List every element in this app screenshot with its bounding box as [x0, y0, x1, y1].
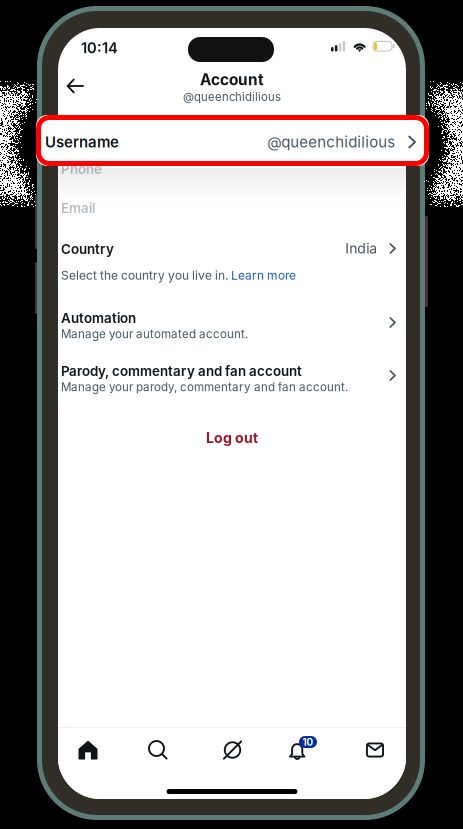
staticText: Learn more	[231, 268, 296, 282]
button[interactable]: Grok	[198, 728, 266, 772]
staticText: Parody, commentary and fan account	[61, 363, 302, 379]
button[interactable]: Search	[124, 728, 192, 772]
staticText: Username	[45, 133, 119, 151]
staticText: Automation	[61, 310, 136, 326]
button[interactable]: Back	[58, 71, 92, 101]
button[interactable]: Messages	[341, 728, 409, 772]
staticText: Select the country you live in.	[61, 268, 231, 282]
staticText: Log out	[206, 429, 258, 446]
staticText: Manage your parody, commentary and fan a…	[61, 380, 348, 394]
button[interactable]: Notifications	[269, 728, 337, 772]
staticText: @queenchidilious	[267, 133, 395, 151]
button[interactable]: Log out	[58, 424, 406, 452]
staticText: Phone	[61, 161, 102, 177]
staticText: 10	[302, 736, 313, 748]
button[interactable]: Username	[58, 115, 406, 141]
staticText: @queenchidilious	[183, 90, 281, 104]
button[interactable]: Country	[58, 234, 406, 286]
staticText: Account	[200, 70, 264, 89]
button[interactable]: Phone	[58, 154, 406, 180]
button[interactable]: Home	[54, 728, 122, 772]
staticText: India	[345, 240, 377, 257]
button[interactable]: Automation	[58, 303, 406, 345]
staticText: Manage your automated account.	[61, 327, 248, 341]
staticText: Country	[61, 241, 114, 257]
button[interactable]: Parody, commentary and fan account	[58, 356, 406, 398]
button[interactable]: Username	[36, 115, 429, 166]
button[interactable]: Email	[58, 193, 406, 219]
staticText: @queenchidilious	[265, 121, 377, 137]
staticText: 10:14	[81, 39, 118, 57]
staticText: Email	[61, 200, 95, 216]
